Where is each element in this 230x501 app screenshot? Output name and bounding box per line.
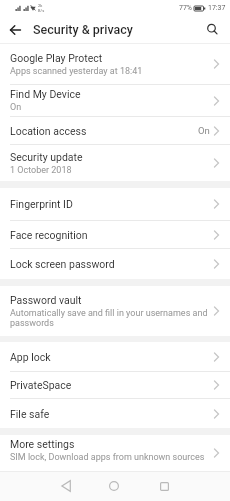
button[interactable]: File safe bbox=[0, 399, 230, 428]
button[interactable]: Face recognition bbox=[0, 221, 230, 248]
staticText: Security update bbox=[10, 151, 83, 163]
button[interactable] bbox=[102, 474, 126, 498]
staticText: More settings bbox=[10, 438, 75, 450]
staticText: SIM lock, Download apps from unknown sou… bbox=[10, 452, 205, 463]
staticText: Password vault bbox=[10, 294, 82, 306]
button[interactable]: Fingerprint ID bbox=[0, 188, 230, 220]
staticText: Apps scanned yesterday at 18:41 bbox=[10, 66, 143, 77]
staticText: Lock screen password bbox=[10, 258, 115, 270]
staticText: PrivateSpace bbox=[10, 379, 72, 391]
button[interactable]: PrivateSpace bbox=[0, 372, 230, 398]
button[interactable] bbox=[152, 474, 176, 498]
staticText: Face recognition bbox=[10, 229, 88, 241]
staticText: 1 October 2018 bbox=[10, 165, 72, 176]
button[interactable]: Find My Device bbox=[0, 85, 230, 116]
staticText: Location access bbox=[10, 125, 87, 137]
button[interactable]: App lock bbox=[0, 342, 230, 371]
staticText: On bbox=[198, 125, 210, 136]
staticText: 2k B/s bbox=[38, 3, 45, 13]
button[interactable] bbox=[54, 474, 78, 498]
button[interactable]: Password vault bbox=[0, 286, 230, 336]
staticText: On bbox=[10, 102, 22, 113]
staticText: Find My Device bbox=[10, 88, 81, 100]
button[interactable]: Security update bbox=[0, 145, 230, 181]
button[interactable] bbox=[10, 25, 21, 35]
staticText: File safe bbox=[10, 408, 50, 420]
staticText: Automatically save and fill in your user… bbox=[10, 308, 208, 328]
staticText: Fingerprint ID bbox=[10, 198, 73, 210]
staticText: 77% bbox=[179, 4, 192, 12]
button[interactable]: Location access bbox=[0, 117, 230, 144]
button[interactable] bbox=[207, 24, 218, 35]
button[interactable]: Lock screen password bbox=[0, 249, 230, 279]
staticText: App lock bbox=[10, 351, 51, 363]
button[interactable]: More settings bbox=[0, 435, 230, 471]
staticText: Security & privacy bbox=[33, 22, 133, 37]
button[interactable]: Google Play Protect bbox=[0, 44, 230, 84]
staticText: Google Play Protect bbox=[10, 52, 103, 64]
staticText: 17:37 bbox=[208, 4, 226, 12]
